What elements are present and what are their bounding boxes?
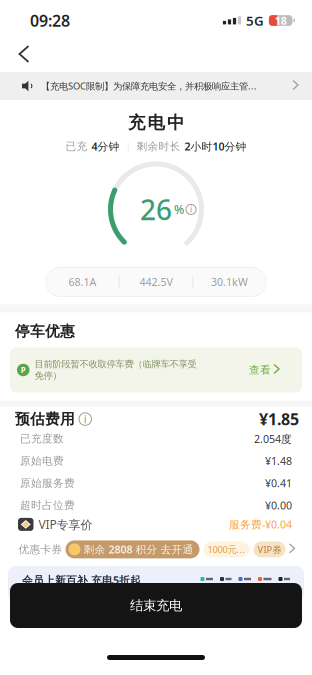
staticText: 充电中 xyxy=(128,112,184,133)
staticText: i xyxy=(84,412,87,426)
staticText: 18 xyxy=(275,13,287,28)
staticText: 会员上新百补 充电5折起 xyxy=(22,573,141,587)
staticText: 超时占位费 xyxy=(20,499,75,512)
staticText: 4分钟 xyxy=(91,139,119,153)
staticText: 结束充电 xyxy=(130,597,182,614)
staticText: ¥1.48 xyxy=(265,454,292,468)
staticText: P xyxy=(21,365,26,375)
staticText: 5G xyxy=(246,12,264,29)
button[interactable]: 优惠卡券 xyxy=(1,540,310,558)
staticText: 已充度数 xyxy=(20,432,64,445)
button[interactable]: 费用说明 xyxy=(79,413,91,425)
staticText: 68.1A xyxy=(68,275,96,289)
staticText: i xyxy=(190,204,192,215)
staticText: 26 xyxy=(140,191,172,228)
staticText: 442.5V xyxy=(139,275,172,289)
staticText: % xyxy=(174,201,184,217)
staticText: 目前阶段暂不收取停车费（临牌车不享受 免停） xyxy=(34,358,196,381)
staticText: 已充 xyxy=(65,140,87,153)
staticText: 2.054度 xyxy=(254,432,292,446)
staticText: 原始电费 xyxy=(20,454,64,467)
staticText: 09:28 xyxy=(30,10,70,31)
button[interactable]: 会员上新百补 充电5折起 xyxy=(8,566,304,602)
staticText: 剩余时长 xyxy=(136,140,180,153)
staticText: 停车优惠 xyxy=(15,322,75,340)
button[interactable]: P xyxy=(10,347,302,392)
staticText: ¥1.85 xyxy=(259,408,299,430)
staticText: 服务费-¥0.04 xyxy=(229,517,292,531)
staticText: VIP券 xyxy=(257,543,281,556)
staticText: ¥0.00 xyxy=(265,498,292,512)
staticText: ¥0.41 xyxy=(265,476,292,490)
staticText: 【充电SOC限制】为保障充电安全，并积极响应主管... xyxy=(41,80,257,92)
staticText: 优惠卡券 xyxy=(18,543,62,556)
button[interactable]: 结束充电 xyxy=(10,583,302,628)
staticText: 2小时10分钟 xyxy=(184,139,246,153)
staticText: 剩余 2808 积分 去开通 xyxy=(83,542,193,556)
button[interactable]: Back xyxy=(12,36,38,66)
staticText: 1000元... xyxy=(207,543,245,556)
staticText: 预估费用 xyxy=(15,410,75,428)
staticText: 查看 xyxy=(249,363,271,376)
staticText: ｜ xyxy=(123,141,132,152)
staticText: 30.1kW xyxy=(211,275,248,289)
staticText: 原始服务费 xyxy=(20,477,75,490)
staticText: VIP专享价 xyxy=(38,516,92,532)
button[interactable]: 【充电SOC限制】为保障充电安全，并积极响应主管... xyxy=(0,72,312,100)
